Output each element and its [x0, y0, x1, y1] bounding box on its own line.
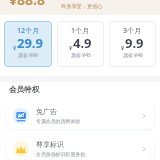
- other: 查看详情: [140, 145, 148, 153]
- staticText: 1个月: [71, 26, 90, 36]
- button[interactable]: 1个月: [57, 21, 104, 67]
- staticText: 终身享受，更省心: [61, 3, 103, 10]
- staticText: 4.9: [73, 34, 92, 52]
- staticText: 原价 ¥46: [123, 52, 143, 59]
- staticText: 会员特权: [9, 85, 40, 95]
- staticText: ¥: [121, 44, 125, 51]
- staticText: 原价 ¥45: [71, 52, 91, 59]
- staticText: 原价 ¥99: [18, 52, 38, 59]
- button[interactable]: 3个月: [109, 21, 156, 67]
- staticText: ¥: [69, 44, 73, 51]
- button[interactable]: 12个月: [4, 21, 52, 67]
- staticText: 29.9: [17, 34, 43, 52]
- button[interactable]: AD: [6, 102, 154, 129]
- staticText: 9.9: [125, 34, 144, 52]
- staticText: ¥: [13, 44, 17, 51]
- staticText: 12个月: [17, 26, 40, 36]
- staticText: ¥88.8: [9, 0, 45, 5]
- staticText: 专属会员的清爽体验: [36, 118, 81, 124]
- staticText: AD: [18, 113, 24, 119]
- staticText: 3个月: [123, 26, 142, 36]
- other: 查看详情: [140, 112, 148, 120]
- button[interactable]: 尊享标识: [6, 137, 154, 160]
- staticText: 尊享标识: [36, 140, 64, 149]
- staticText: 会员身份标识彰显身份: [36, 151, 85, 157]
- staticText: 免广告: [36, 107, 57, 116]
